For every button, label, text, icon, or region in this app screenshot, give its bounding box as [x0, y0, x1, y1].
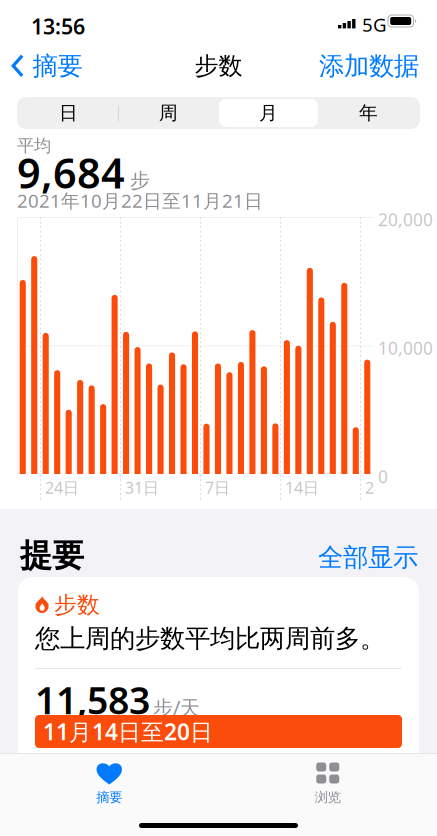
staticText: 10,000 — [378, 336, 433, 359]
staticText: 14日 — [285, 477, 319, 498]
staticText: 摘要 — [96, 789, 122, 805]
staticText: 年 — [359, 101, 378, 124]
button[interactable]: 摘要 — [0, 43, 82, 88]
staticText: 全部显示 — [318, 542, 418, 573]
staticText: 步数 — [54, 591, 100, 619]
staticText: 月 — [259, 101, 278, 124]
staticText: 11月14日至20日 — [43, 716, 213, 746]
staticText: 31日 — [125, 477, 159, 498]
staticText: 周 — [159, 101, 178, 124]
staticText: 您上周的步数平均比两周前多。 — [35, 623, 385, 654]
button[interactable]: 年 — [319, 99, 418, 127]
staticText: 提要 — [20, 536, 84, 575]
staticText: 平均 — [17, 135, 51, 156]
staticText: 摘要 — [32, 50, 82, 81]
staticText: 24日 — [45, 477, 79, 498]
staticText: 2 — [365, 477, 374, 498]
staticText: 7日 — [205, 477, 230, 498]
staticText: 13:56 — [31, 12, 85, 40]
staticText: 2021年10月22日至11月21日 — [17, 188, 263, 213]
staticText: 步数 — [194, 51, 242, 81]
staticText: 日 — [59, 101, 78, 124]
button[interactable]: 月 — [219, 99, 318, 127]
staticText: 20,000 — [378, 208, 433, 231]
button[interactable]: 浏览 — [218, 753, 437, 805]
staticText: 0 — [378, 465, 388, 488]
button[interactable]: 全部显示 — [312, 538, 424, 577]
button[interactable]: 摘要 — [0, 753, 218, 805]
button[interactable]: 日 — [19, 99, 118, 127]
button[interactable]: 周 — [119, 99, 218, 127]
staticText: 步 — [130, 168, 150, 193]
staticText: 添加数据 — [319, 50, 419, 81]
staticText: 9,684 — [17, 145, 125, 200]
button[interactable]: 添加数据 — [319, 43, 437, 88]
staticText: 步/天 — [153, 694, 200, 721]
staticText: 5G — [362, 12, 387, 37]
staticText: 11,583 — [35, 675, 150, 725]
staticText: 浏览 — [315, 789, 341, 805]
